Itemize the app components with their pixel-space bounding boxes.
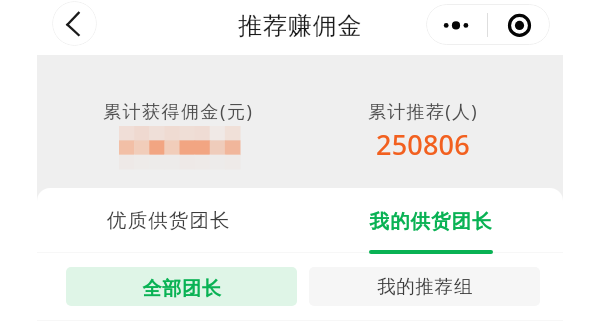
button[interactable]: Back	[52, 1, 97, 46]
button[interactable]: 全部团长	[66, 267, 297, 306]
staticText: 推荐赚佣金	[238, 11, 363, 41]
button[interactable]: 我的供货团长	[306, 188, 558, 254]
button[interactable]: 我的推荐组	[309, 267, 540, 306]
staticText: 累计获得佣金(元)	[103, 99, 254, 124]
staticText: 我的推荐组	[377, 275, 473, 298]
staticText: 累计推荐(人)	[368, 99, 478, 124]
button[interactable]: 累计推荐(人)	[300, 70, 555, 185]
staticText: 优质供货团长	[107, 208, 231, 233]
button[interactable]: 优质供货团长	[43, 188, 295, 254]
staticText: 全部团长	[142, 277, 222, 301]
button[interactable]: Close mini program	[488, 4, 550, 45]
button[interactable]: 累计获得佣金(元)	[45, 70, 300, 185]
button[interactable]: More options	[426, 4, 487, 45]
staticText: 250806	[376, 126, 470, 163]
staticText: 我的供货团长	[369, 209, 492, 234]
